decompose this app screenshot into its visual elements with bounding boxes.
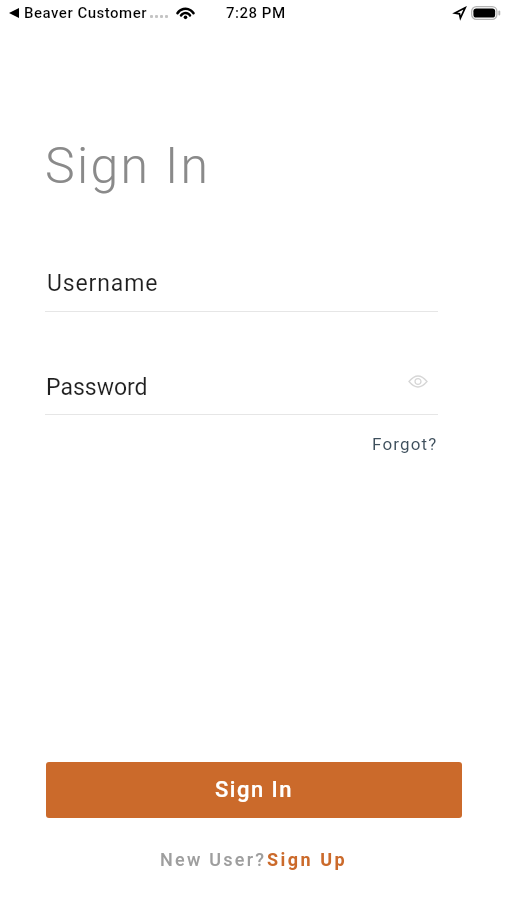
- staticText: Sign In: [215, 777, 294, 803]
- button[interactable]: Show password: [400, 363, 436, 399]
- staticText: New User?: [160, 849, 267, 870]
- staticText: Beaver Customer: [24, 4, 147, 22]
- staticText: Forgot?: [372, 434, 438, 454]
- staticText: Sign In: [45, 137, 211, 196]
- staticText: Password: [46, 374, 148, 401]
- staticText: Sign Up: [267, 849, 348, 870]
- staticText: Username: [47, 270, 159, 297]
- button[interactable]: Sign Up: [267, 849, 348, 870]
- staticText: 7:28 PM: [226, 4, 286, 22]
- button[interactable]: Sign In: [46, 762, 462, 818]
- button[interactable]: Forgot?: [364, 430, 446, 458]
